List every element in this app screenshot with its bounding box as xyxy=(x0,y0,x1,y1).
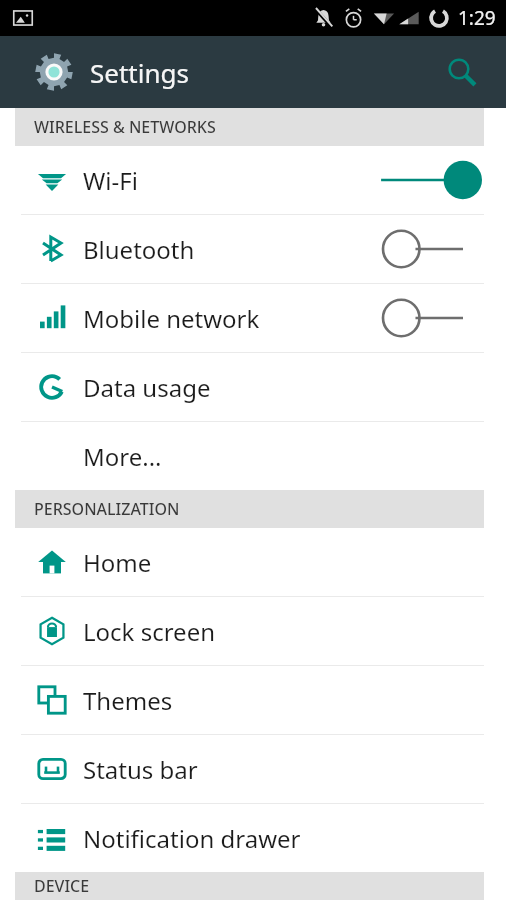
button[interactable]: Home xyxy=(0,528,506,596)
button[interactable]: Bluetooth xyxy=(0,215,506,283)
staticText: Data usage xyxy=(83,371,211,404)
staticText: Notification drawer xyxy=(83,822,301,855)
button[interactable]: Data usage xyxy=(0,353,506,421)
staticText: Bluetooth xyxy=(83,233,195,266)
button[interactable]: Lock screen xyxy=(0,597,506,665)
staticText: Status bar xyxy=(83,753,198,786)
staticText: More... xyxy=(83,440,162,473)
staticText: Mobile network xyxy=(83,302,260,335)
staticText: Wi-Fi xyxy=(83,164,138,197)
staticText: Lock screen xyxy=(83,615,216,648)
staticText: Themes xyxy=(83,684,173,717)
button[interactable]: Toggle off xyxy=(379,225,484,273)
button[interactable]: Search xyxy=(438,48,486,96)
button[interactable]: More... xyxy=(0,422,506,490)
button[interactable]: Themes xyxy=(0,666,506,734)
button[interactable]: Notification drawer xyxy=(0,804,506,872)
button[interactable]: Status bar xyxy=(0,735,506,803)
staticText: Home xyxy=(83,546,152,579)
staticText: 1:29 xyxy=(458,5,496,31)
staticText: Settings xyxy=(90,55,189,90)
button[interactable]: Mobile network xyxy=(0,284,506,352)
staticText: WIRELESS & NETWORKS xyxy=(34,116,216,138)
button[interactable]: Wi-Fi xyxy=(0,146,506,214)
button[interactable]: Toggle on xyxy=(379,156,484,204)
button[interactable]: Toggle off xyxy=(379,294,484,342)
staticText: PERSONALIZATION xyxy=(34,498,180,520)
staticText: DEVICE xyxy=(34,875,90,897)
